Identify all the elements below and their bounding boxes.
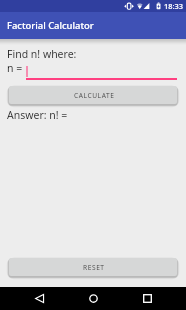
staticText: Answer: n! = [7,108,68,122]
button[interactable]: RESET [9,258,177,276]
staticText: n = [7,61,23,75]
staticText: Factorial Calculator [7,19,94,32]
button[interactable]: Back [18,287,61,310]
staticText: RESET [83,263,105,272]
button[interactable]: CALCULATE [9,86,177,104]
staticText: Find n! where: [7,47,77,61]
button[interactable]: Recents [125,287,168,310]
staticText: 18:33 [164,1,183,11]
button[interactable]: Home [72,287,115,310]
staticText: CALCULATE [74,91,115,100]
